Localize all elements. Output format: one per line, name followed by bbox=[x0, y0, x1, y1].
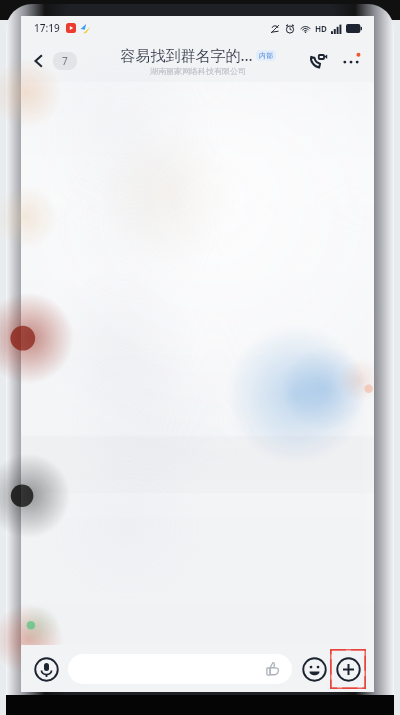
button[interactable]: Back bbox=[21, 46, 83, 76]
staticText: 容易找到群名字的… bbox=[120, 45, 253, 65]
button[interactable]: Like bbox=[68, 654, 292, 684]
staticText: 10:10 bbox=[353, 5, 374, 16]
staticText: HD bbox=[315, 23, 327, 34]
staticText: 17:19 bbox=[34, 21, 60, 35]
staticText: 内部 bbox=[259, 51, 273, 60]
button[interactable]: Call bbox=[302, 45, 334, 77]
button[interactable]: Voice message bbox=[29, 652, 63, 686]
other: Like bbox=[264, 660, 282, 678]
button[interactable]: More options bbox=[334, 44, 368, 78]
button[interactable]: More actions bbox=[333, 654, 363, 684]
staticText: 7 bbox=[62, 54, 68, 68]
button[interactable]: Emoji bbox=[298, 653, 330, 685]
staticText: 湖南丽家网络科技有限公司 bbox=[150, 66, 246, 76]
